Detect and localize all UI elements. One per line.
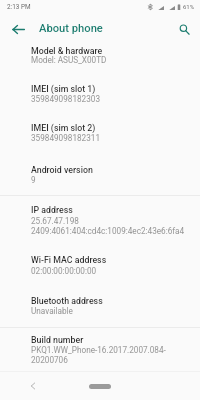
staticText: IMEI (sim slot 1) bbox=[31, 84, 96, 94]
button[interactable]: Navigate up bbox=[6, 17, 30, 41]
button[interactable] bbox=[0, 292, 200, 315]
staticText: 2409:4061:404:cd4c:1009:4ec2:43e6:6fa4 bbox=[31, 226, 185, 236]
staticText: IP address bbox=[31, 205, 73, 215]
staticText: Build number bbox=[31, 335, 84, 345]
staticText: 25.67.47.198 bbox=[31, 216, 79, 226]
staticText: 02:00:00:00:00:00 bbox=[31, 266, 97, 276]
button[interactable] bbox=[0, 42, 200, 65]
staticText: 359849098182303 bbox=[31, 94, 101, 104]
staticText: 359849098182311 bbox=[31, 133, 101, 143]
button[interactable] bbox=[0, 331, 200, 364]
staticText: Android version bbox=[31, 165, 93, 175]
staticText: 9 bbox=[31, 175, 36, 185]
button[interactable]: Back bbox=[26, 379, 40, 393]
staticText: Model: ASUS_X00TD bbox=[31, 55, 107, 65]
button[interactable] bbox=[0, 80, 200, 103]
button[interactable] bbox=[0, 119, 200, 142]
button[interactable]: Search bbox=[173, 18, 195, 40]
staticText: IMEI (sim slot 2) bbox=[31, 123, 96, 133]
staticText: Wi-Fi MAC address bbox=[31, 255, 107, 265]
staticText: 2:13 PM bbox=[7, 3, 31, 11]
staticText: PKQ1.WW_Phone-16.2017.2007.084- bbox=[31, 345, 166, 355]
button[interactable] bbox=[0, 251, 200, 274]
staticText: Model & hardware bbox=[31, 46, 103, 56]
button[interactable] bbox=[0, 201, 200, 235]
button[interactable] bbox=[0, 161, 200, 184]
button[interactable]: Home bbox=[89, 384, 111, 389]
staticText: 61% bbox=[183, 3, 195, 10]
staticText: Unavailable bbox=[31, 306, 73, 316]
staticText: About phone bbox=[39, 22, 103, 35]
staticText: Bluetooth address bbox=[31, 296, 103, 306]
staticText: 20200706 bbox=[31, 355, 68, 365]
